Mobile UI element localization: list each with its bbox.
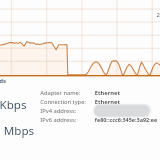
button[interactable] bbox=[0, 0, 160, 160]
